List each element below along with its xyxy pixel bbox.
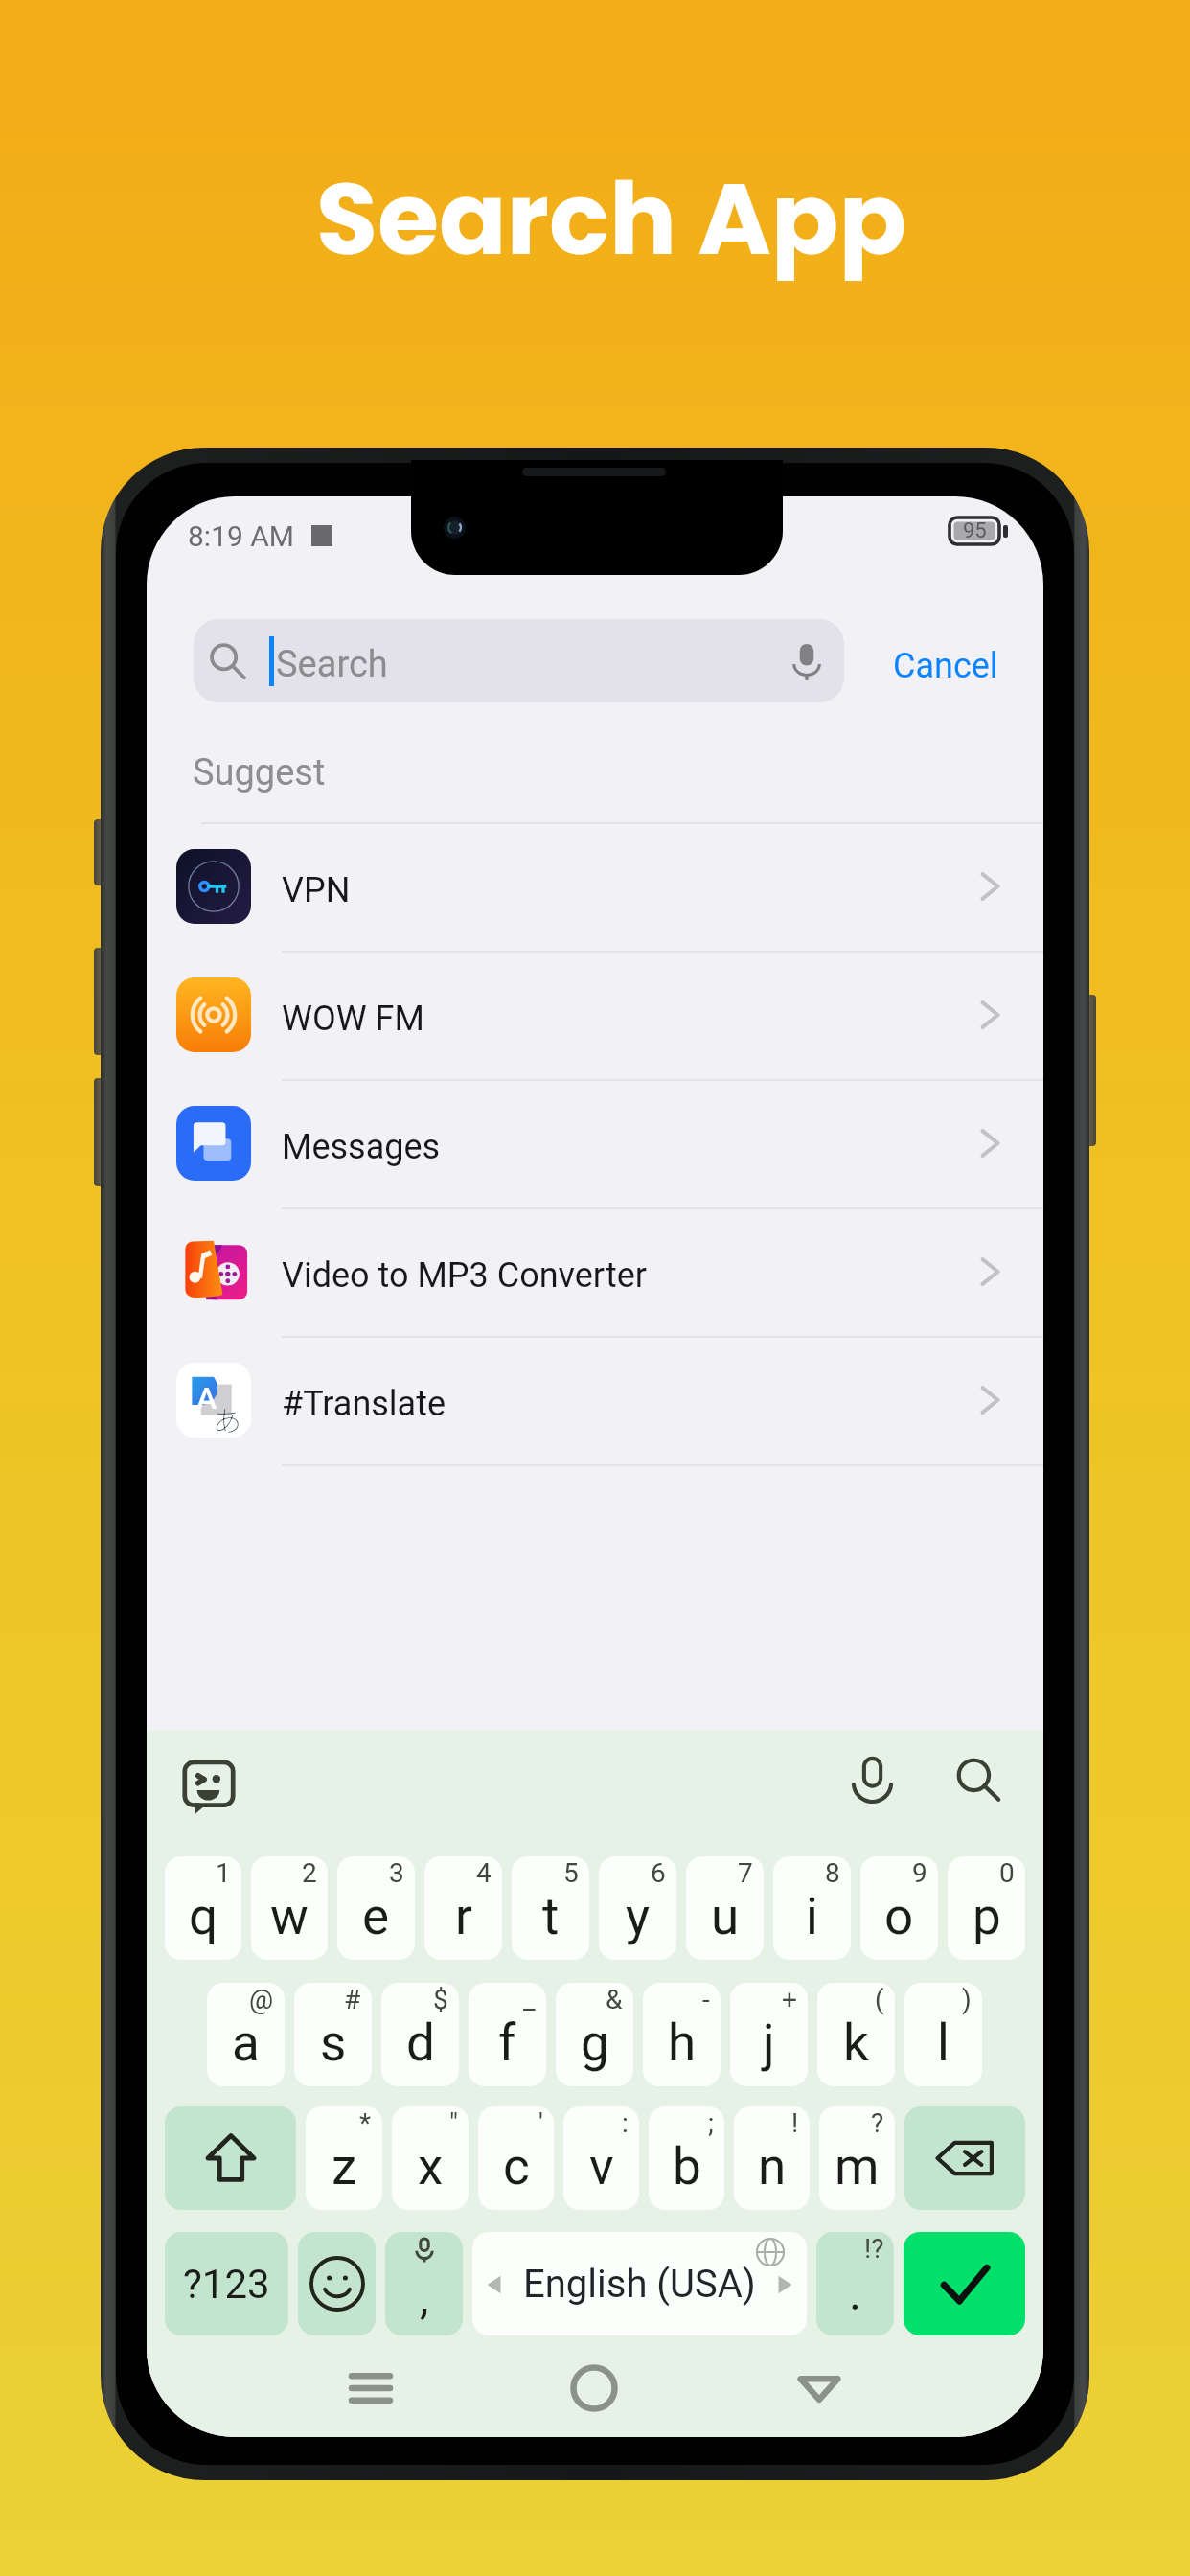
- button[interactable]: 0: [948, 1856, 1025, 1960]
- button[interactable]: !: [734, 2106, 810, 2210]
- button[interactable]: 1: [165, 1856, 241, 1960]
- staticText: e: [362, 1887, 390, 1946]
- staticText: ': [538, 2107, 543, 2139]
- button[interactable]: Video to MP3 Converter: [147, 1207, 1043, 1336]
- staticText: u: [711, 1887, 740, 1946]
- staticText: ,: [420, 2270, 429, 2324]
- staticText: m: [835, 2137, 880, 2196]
- staticText: ?: [871, 2107, 884, 2139]
- staticText: h: [668, 2013, 697, 2073]
- button[interactable]: #: [294, 1983, 372, 2086]
- button[interactable]: 3: [337, 1856, 415, 1960]
- staticText: #Translate: [282, 1384, 446, 1424]
- staticText: _: [523, 1984, 536, 2015]
- staticText: Video to MP3 Converter: [282, 1255, 648, 1296]
- button[interactable]: A: [147, 1336, 1043, 1464]
- button[interactable]: 9: [860, 1856, 938, 1960]
- staticText: WOW FM: [282, 999, 424, 1039]
- button[interactable]: Sticker: [182, 1759, 236, 1813]
- staticText: 9: [912, 1857, 927, 1889]
- button[interactable]: Emoji: [298, 2232, 376, 2335]
- staticText: 8:19 AM: [188, 519, 295, 553]
- button[interactable]: VPN: [147, 822, 1043, 951]
- staticText: s: [320, 2013, 347, 2073]
- staticText: :: [622, 2107, 629, 2139]
- button[interactable]: ": [392, 2106, 469, 2210]
- staticText: 0: [999, 1857, 1015, 1889]
- button[interactable]: 2: [251, 1856, 328, 1960]
- staticText: q: [189, 1887, 218, 1946]
- button[interactable]: 6: [599, 1856, 676, 1960]
- button[interactable]: English (USA): [472, 2232, 807, 2335]
- button[interactable]: Backspace: [904, 2106, 1025, 2210]
- staticText: w: [270, 1887, 309, 1946]
- staticText: 4: [476, 1857, 492, 1889]
- button[interactable]: Shift: [165, 2106, 296, 2210]
- staticText: A: [196, 1380, 217, 1416]
- staticText: +: [782, 1984, 797, 2015]
- button[interactable]: ': [478, 2106, 554, 2210]
- staticText: @: [249, 1984, 274, 2015]
- staticText: ": [449, 2107, 458, 2139]
- staticText: !?: [864, 2233, 884, 2265]
- button[interactable]: 4: [424, 1856, 502, 1960]
- button[interactable]: WOW FM: [147, 951, 1043, 1079]
- button[interactable]: :: [563, 2106, 639, 2210]
- staticText: 6: [651, 1857, 666, 1889]
- button[interactable]: 8: [773, 1856, 851, 1960]
- button[interactable]: ;: [649, 2106, 724, 2210]
- button[interactable]: $: [381, 1983, 459, 2086]
- button[interactable]: _: [469, 1983, 546, 2086]
- staticText: English (USA): [523, 2262, 756, 2307]
- button[interactable]: *: [306, 2106, 382, 2210]
- button[interactable]: @: [207, 1983, 285, 2086]
- button[interactable]: &: [556, 1983, 633, 2086]
- staticText: d: [406, 2013, 435, 2073]
- button[interactable]: Search: [956, 1758, 1000, 1802]
- staticText: t: [542, 1887, 560, 1946]
- staticText: p: [973, 1887, 1001, 1946]
- staticText: r: [455, 1887, 472, 1946]
- staticText: $: [433, 1984, 448, 2015]
- staticText: k: [843, 2013, 869, 2073]
- staticText: !: [791, 2107, 799, 2139]
- staticText: (: [875, 1984, 884, 2015]
- staticText: #: [344, 1984, 361, 2015]
- button[interactable]: Cancel: [878, 631, 1014, 701]
- button[interactable]: Messages: [147, 1079, 1043, 1207]
- button[interactable]: 5: [512, 1856, 589, 1960]
- staticText: n: [758, 2137, 787, 2196]
- staticText: o: [884, 1887, 914, 1946]
- staticText: y: [626, 1887, 651, 1946]
- staticText: ?123: [183, 2261, 270, 2308]
- staticText: l: [937, 2013, 950, 2073]
- staticText: -: [702, 1984, 710, 2015]
- button[interactable]: (: [817, 1983, 895, 2086]
- button[interactable]: Recent apps: [342, 2359, 400, 2417]
- button[interactable]: Search: [194, 619, 844, 702]
- button[interactable]: ?123: [165, 2232, 288, 2335]
- button[interactable]: ?: [819, 2106, 895, 2210]
- staticText: 8: [825, 1857, 840, 1889]
- staticText: Cancel: [893, 646, 998, 686]
- staticText: c: [503, 2137, 530, 2196]
- staticText: 3: [389, 1857, 404, 1889]
- button[interactable]: +: [730, 1983, 808, 2086]
- button[interactable]: Voice input: [850, 1756, 896, 1802]
- staticText: 5: [563, 1857, 579, 1889]
- button[interactable]: ): [904, 1983, 982, 2086]
- staticText: x: [418, 2137, 444, 2196]
- button[interactable]: !?: [816, 2232, 894, 2335]
- button[interactable]: 7: [686, 1856, 764, 1960]
- button[interactable]: Home: [565, 2359, 623, 2417]
- staticText: f: [498, 2013, 516, 2073]
- button[interactable]: Back: [790, 2359, 848, 2417]
- staticText: 7: [738, 1857, 753, 1889]
- staticText: z: [332, 2137, 357, 2196]
- button[interactable]: ,: [385, 2232, 463, 2335]
- button[interactable]: Enter: [904, 2232, 1025, 2335]
- staticText: Messages: [282, 1127, 441, 1167]
- button[interactable]: -: [643, 1983, 721, 2086]
- staticText: VPN: [282, 870, 351, 910]
- staticText: &: [606, 1984, 623, 2015]
